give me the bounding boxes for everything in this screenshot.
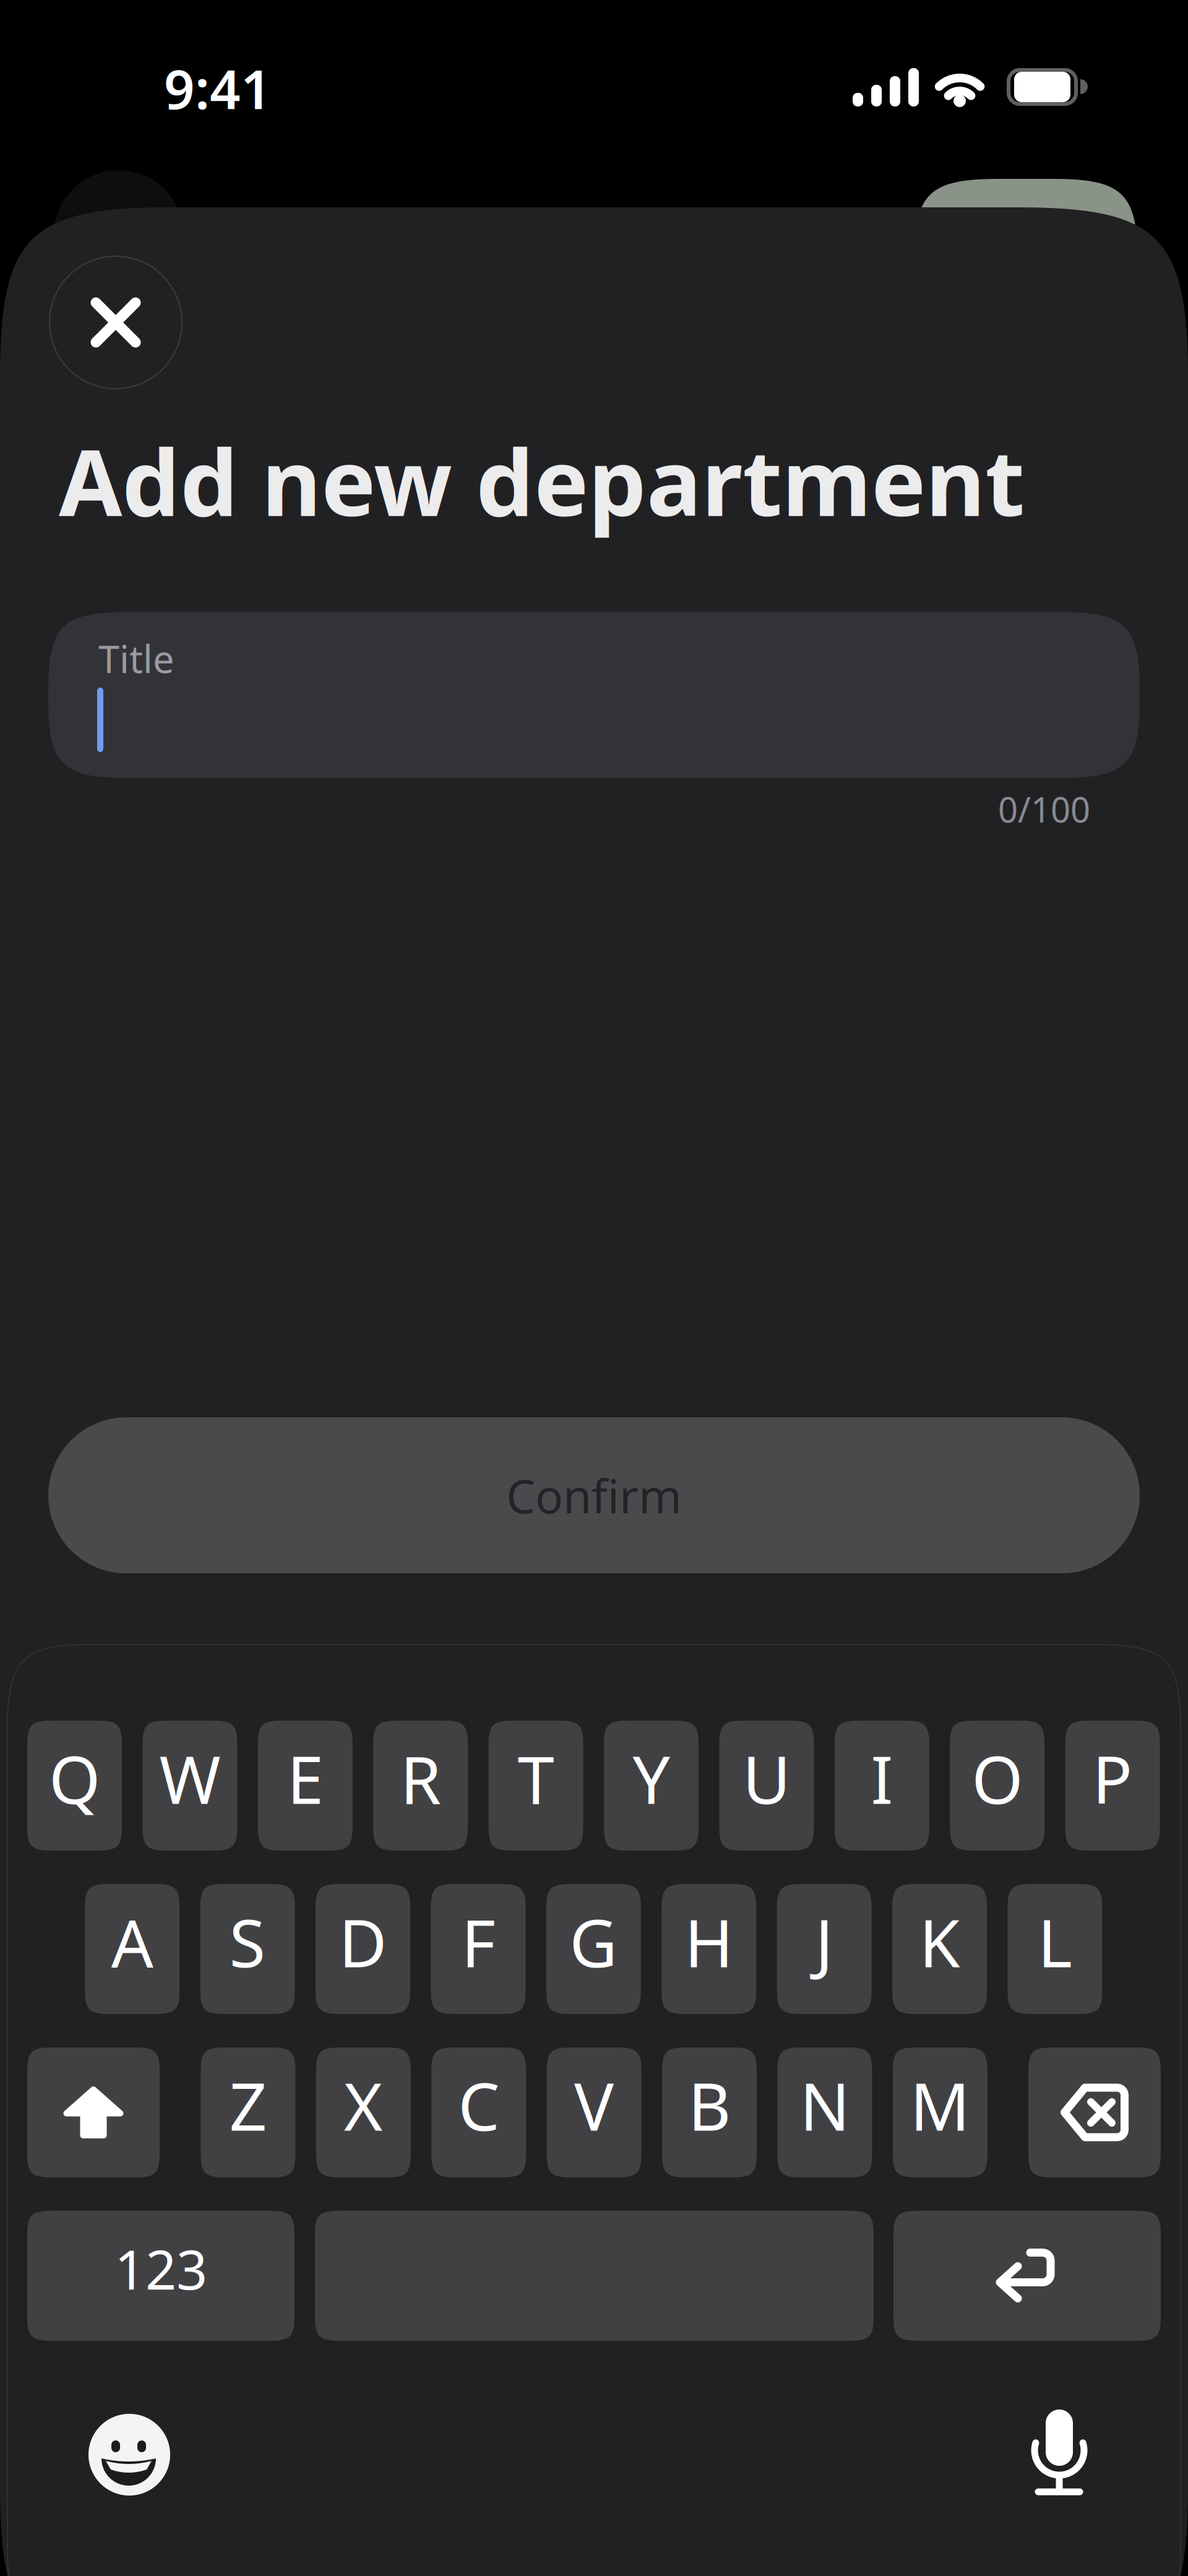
button[interactable] [49, 256, 182, 389]
button[interactable]: O [950, 1721, 1045, 1851]
button[interactable]: G [546, 1884, 641, 2014]
button[interactable]: W [143, 1721, 237, 1851]
button[interactable]: Q [27, 1721, 122, 1851]
staticText: Q [49, 1734, 100, 1822]
button[interactable] [893, 2211, 1161, 2341]
button[interactable]: Z [201, 2047, 295, 2177]
staticText: L [1038, 1898, 1072, 1985]
staticText: U [742, 1734, 791, 1822]
staticText: Add new department [59, 420, 1025, 541]
staticText: K [919, 1898, 960, 1985]
button[interactable]: Confirm [48, 1417, 1140, 1573]
button[interactable]: V [547, 2047, 641, 2177]
button[interactable] [1031, 2410, 1087, 2496]
staticText: R [400, 1734, 441, 1822]
staticText: G [569, 1898, 618, 1985]
staticText: S [229, 1898, 266, 1985]
staticText: H [684, 1898, 733, 1985]
button[interactable]: R [373, 1721, 468, 1851]
staticText: D [339, 1898, 387, 1985]
staticText: 0/100 [998, 786, 1090, 832]
staticText: E [287, 1734, 323, 1822]
button[interactable]: S [200, 1884, 295, 2014]
staticText: J [815, 1898, 833, 1985]
button[interactable]: L [1008, 1884, 1102, 2014]
button[interactable]: F [431, 1884, 526, 2014]
staticText: B [688, 2061, 731, 2149]
staticText: V [574, 2061, 614, 2149]
button[interactable]: Y [604, 1721, 699, 1851]
staticText: P [1092, 1734, 1133, 1822]
button[interactable]: Title [48, 612, 1140, 778]
button[interactable]: I [835, 1721, 929, 1851]
button[interactable]: K [892, 1884, 987, 2014]
staticText: T [518, 1734, 554, 1822]
staticText: 123 [114, 2232, 207, 2305]
staticText: F [461, 1898, 495, 1985]
button[interactable]: C [431, 2047, 526, 2177]
button[interactable]: M [893, 2047, 987, 2177]
staticText: O [972, 1734, 1023, 1822]
button[interactable]: J [777, 1884, 872, 2014]
staticText: W [159, 1734, 221, 1822]
staticText: Title [98, 633, 174, 684]
button[interactable]: 123 [27, 2211, 295, 2341]
button[interactable]: D [316, 1884, 410, 2014]
staticText: C [458, 2061, 499, 2149]
button[interactable] [88, 2414, 170, 2496]
button[interactable]: B [662, 2047, 757, 2177]
button[interactable] [1028, 2047, 1161, 2177]
staticText: N [800, 2061, 850, 2149]
button[interactable]: N [777, 2047, 872, 2177]
staticText: 9:41 [164, 53, 272, 124]
button[interactable]: X [316, 2047, 411, 2177]
staticText: I [871, 1734, 893, 1822]
button[interactable]: P [1065, 1721, 1160, 1851]
staticText: Y [633, 1734, 670, 1822]
staticText: X [344, 2061, 383, 2149]
button[interactable] [27, 2047, 160, 2177]
button[interactable]: E [258, 1721, 353, 1851]
button[interactable]: H [662, 1884, 756, 2014]
button[interactable]: U [719, 1721, 814, 1851]
staticText: Confirm [506, 1465, 682, 1526]
button[interactable]: T [489, 1721, 583, 1851]
button[interactable]: A [85, 1884, 180, 2014]
staticText: Z [229, 2061, 267, 2149]
staticText: M [910, 2061, 970, 2149]
staticText: A [111, 1898, 153, 1985]
